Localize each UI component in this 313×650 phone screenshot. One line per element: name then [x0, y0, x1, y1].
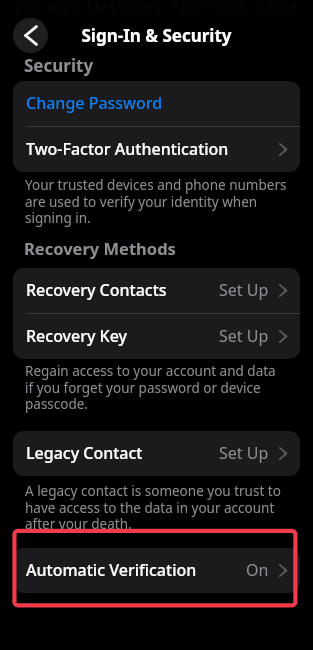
staticText: Sign-In & Security: [81, 24, 232, 47]
button[interactable]: Recovery Contacts: [13, 268, 300, 313]
staticText: Recovery Key: [26, 325, 128, 347]
button[interactable]: Two-Factor Authentication: [13, 127, 300, 172]
staticText: Recovery Methods: [24, 237, 176, 259]
staticText: Your trusted devices and phone numbers a…: [25, 176, 287, 227]
staticText: Change Password: [26, 92, 163, 114]
staticText: Set Up: [219, 279, 269, 301]
button[interactable]: Recovery Key: [13, 314, 300, 359]
staticText: Set Up: [219, 442, 269, 464]
button[interactable]: Back: [13, 18, 48, 53]
staticText: Legacy Contact: [26, 442, 143, 464]
staticText: Automatic Verification: [26, 559, 197, 581]
staticText: Recovery Contacts: [26, 279, 167, 301]
staticText: Security: [24, 54, 94, 77]
staticText: Set Up: [219, 325, 269, 347]
button[interactable]: Automatic Verification: [13, 548, 300, 593]
staticText: On: [246, 559, 269, 581]
button[interactable]: Change Password: [13, 81, 300, 126]
staticText: Regain access to your account and data i…: [25, 362, 287, 413]
button[interactable]: Legacy Contact: [13, 431, 300, 476]
staticText: A legacy contact is someone you trust to…: [25, 482, 287, 533]
staticText: Two-Factor Authentication: [26, 138, 229, 160]
